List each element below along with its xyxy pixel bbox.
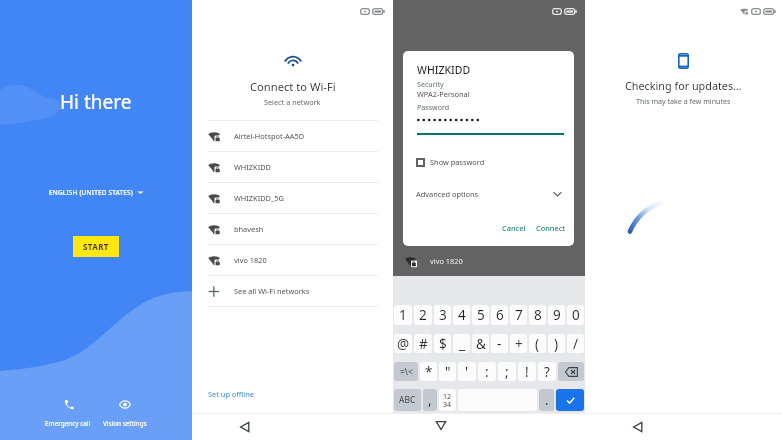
staticText: : xyxy=(485,363,489,381)
button[interactable]: Connect xyxy=(532,221,570,235)
button[interactable]: @ xyxy=(394,334,412,353)
staticText: bhavesh xyxy=(234,224,264,234)
button[interactable]: vivo 1820 xyxy=(208,245,378,275)
staticText: @ xyxy=(397,335,410,353)
button[interactable]: ( xyxy=(529,334,546,353)
button[interactable]: START xyxy=(73,236,119,257)
button[interactable]: Set up offline xyxy=(206,387,256,401)
button[interactable] xyxy=(558,362,584,381)
button[interactable]: WHIZKIDD_5G xyxy=(208,183,378,213)
button[interactable]: 9 xyxy=(548,305,565,325)
button[interactable]: ; xyxy=(498,362,516,381)
button[interactable]: + xyxy=(510,334,527,353)
button[interactable]: , xyxy=(423,389,437,411)
button[interactable]: ! xyxy=(518,362,536,381)
button[interactable]: : xyxy=(478,362,496,381)
button[interactable]: Back xyxy=(628,417,648,437)
button[interactable]: bhavesh xyxy=(208,214,378,244)
button[interactable]: Advanced options xyxy=(414,187,564,201)
button[interactable]: " xyxy=(439,362,456,381)
staticText: 6 xyxy=(496,306,504,324)
staticText: 5 xyxy=(477,306,485,324)
button[interactable]: =\< xyxy=(394,362,418,381)
staticText: . xyxy=(545,391,549,409)
staticText: & xyxy=(476,335,486,353)
staticText: Hi there xyxy=(60,89,132,115)
staticText: Checking for updates… xyxy=(625,78,742,93)
button[interactable]: Back xyxy=(235,417,255,437)
staticText: 9 xyxy=(553,306,561,324)
staticText: ; xyxy=(505,363,509,381)
button[interactable]: 12 34 xyxy=(439,389,456,411)
button[interactable]: Vision settings xyxy=(98,396,152,431)
button[interactable]: & xyxy=(472,334,489,353)
button[interactable]: 2 xyxy=(414,305,432,325)
staticText: vivo 1820 xyxy=(430,256,463,266)
staticText: Emergency call xyxy=(45,419,91,428)
button[interactable]: Emergency call xyxy=(40,396,96,431)
staticText: ABC xyxy=(399,394,416,406)
staticText: Security xyxy=(417,79,444,89)
staticText: 12 34 xyxy=(443,392,452,409)
button[interactable] xyxy=(556,389,584,411)
button[interactable]: Hide keyboard xyxy=(431,415,451,435)
staticText: See all Wi-Fi networks xyxy=(234,286,310,296)
staticText: 0 xyxy=(572,306,580,324)
button[interactable]: ABC xyxy=(394,389,421,411)
button[interactable]: 8 xyxy=(529,305,546,325)
button[interactable]: Show password xyxy=(414,155,487,169)
staticText: ' xyxy=(465,363,469,381)
button[interactable]: _ xyxy=(453,334,470,353)
staticText: Show password xyxy=(430,157,485,167)
button[interactable]: ? xyxy=(538,362,556,381)
staticText: 4 xyxy=(458,306,466,324)
button[interactable]: Airtel-Hotspot-AA5D xyxy=(208,121,378,151)
staticText: =\< xyxy=(400,366,413,378)
button[interactable]: ' xyxy=(458,362,476,381)
staticText: * xyxy=(425,363,433,381)
staticText: - xyxy=(497,335,502,353)
staticText: 3 xyxy=(439,306,447,324)
staticText: Connect to Wi-Fi xyxy=(250,79,336,94)
button[interactable]: 3 xyxy=(434,305,451,325)
button[interactable]: Cancel xyxy=(498,221,530,235)
staticText: Set up offline xyxy=(208,389,254,399)
staticText: Vision settings xyxy=(103,419,147,428)
staticText: 2 xyxy=(419,306,427,324)
button[interactable]: 0 xyxy=(567,305,584,325)
staticText: ENGLISH (UNITED STATES) xyxy=(49,188,133,197)
staticText: 8 xyxy=(534,306,542,324)
button[interactable]: WHIZKIDD xyxy=(208,152,378,182)
button[interactable]: 1 xyxy=(394,305,412,325)
button[interactable]: 5 xyxy=(472,305,489,325)
staticText: 1 xyxy=(399,306,407,324)
staticText: + xyxy=(515,335,523,353)
button[interactable]: . xyxy=(539,389,554,411)
button[interactable]: ) xyxy=(548,334,565,353)
button[interactable]: 6 xyxy=(491,305,508,325)
staticText: WHIZKIDD xyxy=(234,162,271,172)
staticText: Airtel-Hotspot-AA5D xyxy=(234,131,305,141)
button[interactable]: 4 xyxy=(453,305,470,325)
button[interactable]: * xyxy=(420,362,437,381)
button[interactable]: 7 xyxy=(510,305,527,325)
button[interactable]: See all Wi-Fi networks xyxy=(208,276,378,306)
staticText: WPA2-Personal xyxy=(417,89,470,99)
staticText: ! xyxy=(525,363,529,381)
staticText: ( xyxy=(535,335,540,353)
button[interactable]: / xyxy=(567,334,584,353)
button[interactable]: - xyxy=(491,334,508,353)
staticText: # xyxy=(419,335,428,353)
button[interactable]: $ xyxy=(434,334,451,353)
staticText: $ xyxy=(439,335,447,353)
staticText: 7 xyxy=(515,306,523,324)
staticText: Connect xyxy=(536,223,566,233)
staticText: WHIZKIDD_5G xyxy=(234,193,284,203)
staticText: , xyxy=(428,391,432,409)
staticText: START xyxy=(83,241,109,252)
button[interactable]: ENGLISH (UNITED STATES) xyxy=(49,188,144,197)
staticText: Advanced options xyxy=(416,189,479,199)
button[interactable]: # xyxy=(414,334,432,353)
staticText: ? xyxy=(544,363,550,381)
